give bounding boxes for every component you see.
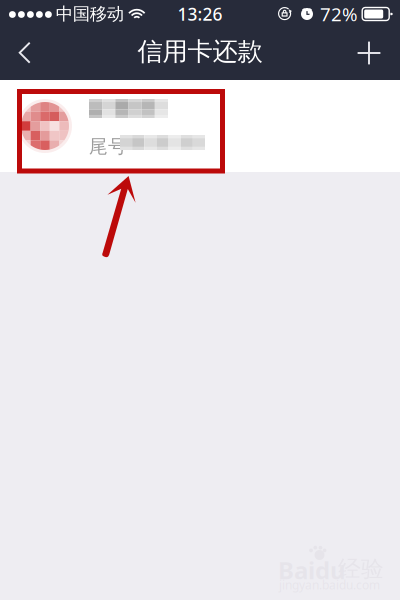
button[interactable]: Back [0, 28, 48, 80]
staticText: 信用卡还款 [137, 36, 262, 67]
staticText: 13:26 [177, 2, 222, 25]
staticText: 尾号 [89, 135, 127, 158]
button[interactable]: Add [345, 28, 393, 80]
staticText: 经验 [338, 555, 384, 583]
staticText: jingyan.baidu.com [279, 577, 380, 593]
staticText: 中国移动 [56, 3, 124, 25]
staticText: 72% [320, 2, 358, 26]
button[interactable]: 尾号 [0, 80, 400, 172]
staticText: Baidu [278, 554, 346, 586]
